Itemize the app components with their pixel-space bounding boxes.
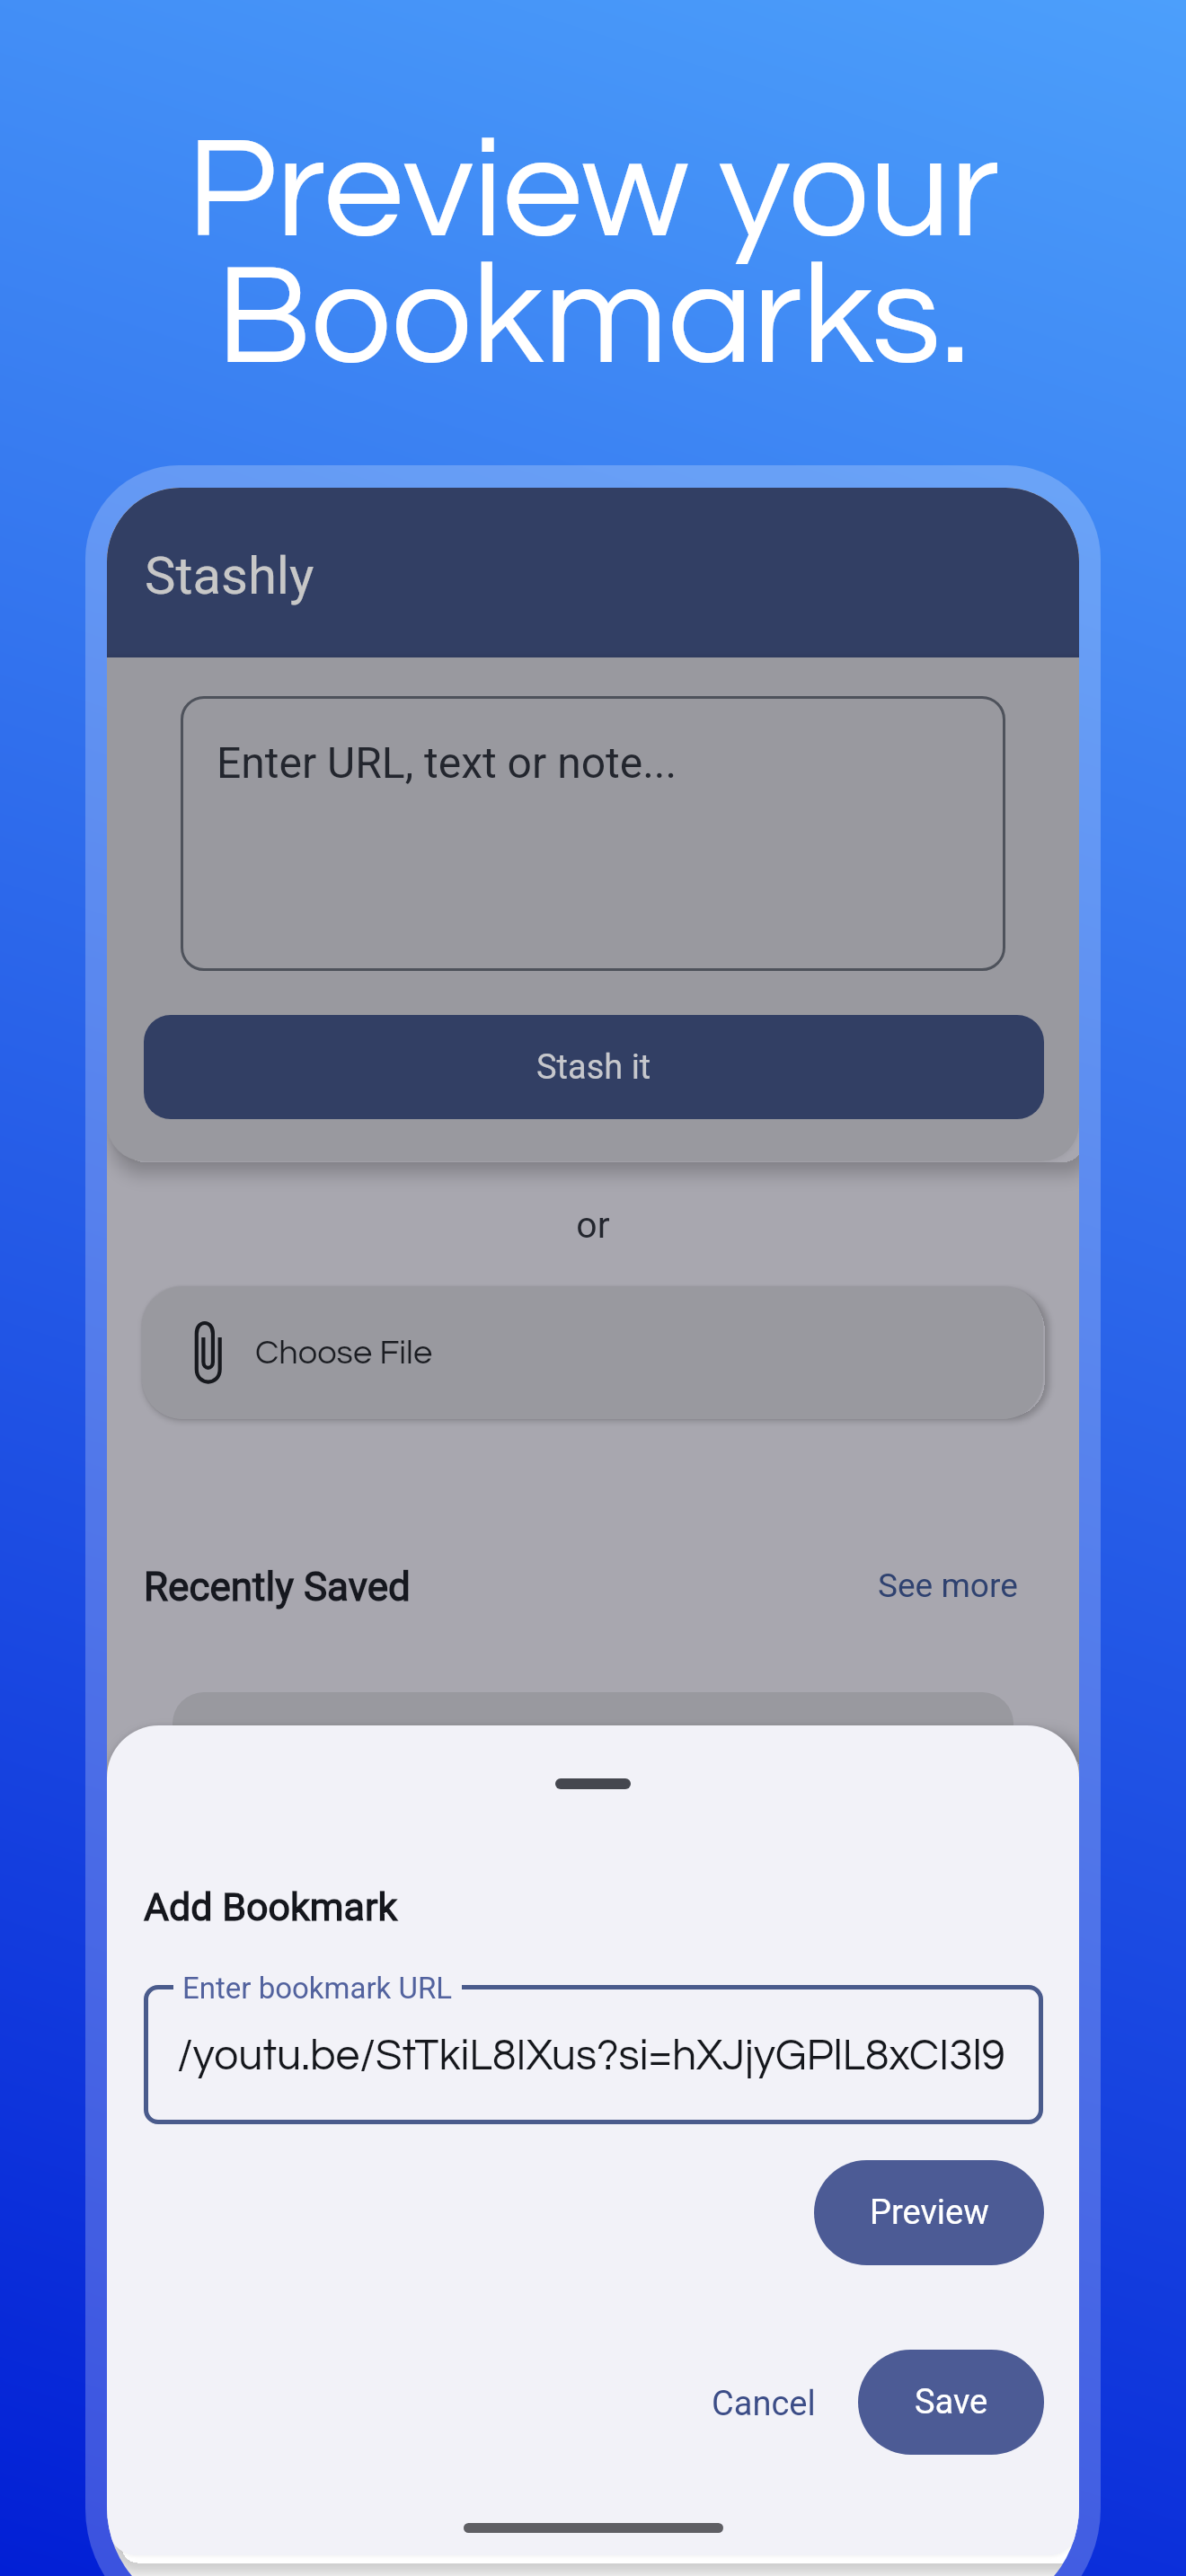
staticText: or (107, 1204, 1079, 1247)
staticText: Cancel (712, 2384, 816, 2424)
staticText: Add Bookmark (144, 1884, 398, 1929)
button[interactable]: Cancel (694, 2369, 834, 2439)
staticText: Choose File (255, 1336, 433, 1371)
button[interactable]: Stash it (144, 1015, 1044, 1119)
staticText: Recently Saved (144, 1564, 411, 1610)
button[interactable]: See more (878, 1566, 1018, 1605)
button[interactable]: Save (858, 2350, 1044, 2455)
staticText: Enter bookmark URL (182, 1971, 453, 2003)
staticText: See more (878, 1566, 1018, 1605)
button[interactable]: Attach file (142, 1286, 1043, 1419)
staticText: Preview your Bookmarks. (0, 119, 1186, 393)
staticText: Save (915, 2382, 988, 2422)
staticText: /youtu.be/StTkiL8IXus?si=hXJjyGPlL8xCI3l… (177, 2034, 1005, 2078)
staticText: Preview (870, 2192, 989, 2233)
button[interactable]: Preview (814, 2160, 1044, 2265)
other: Attach file (194, 1325, 222, 1381)
staticText: Stashly (145, 545, 314, 606)
staticText: Enter URL, text or note... (217, 737, 677, 788)
staticText: Stash it (536, 1047, 651, 1088)
